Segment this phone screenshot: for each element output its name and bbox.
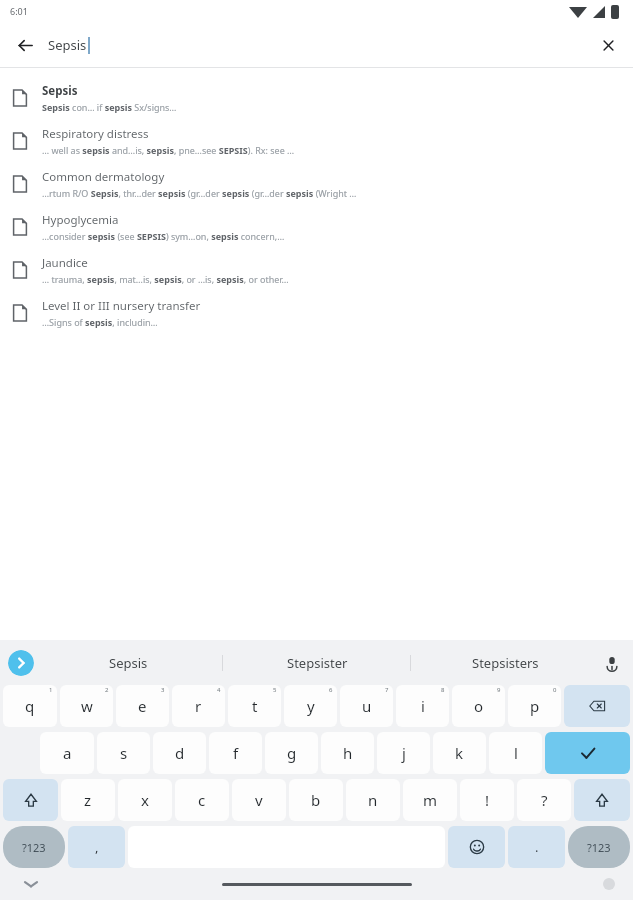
button[interactable]: Shift xyxy=(574,779,630,821)
button[interactable]: Level II or III nursery transfer xyxy=(0,291,633,334)
button[interactable]: Stepsister xyxy=(223,640,411,685)
staticText: 4 xyxy=(217,686,221,694)
button[interactable]: k xyxy=(433,732,486,774)
button[interactable]: . xyxy=(508,826,565,868)
button[interactable]: Sepsis xyxy=(34,640,223,685)
staticText: o xyxy=(474,696,484,716)
staticText: e xyxy=(138,696,147,716)
button[interactable]: w xyxy=(60,685,113,727)
staticText: t xyxy=(252,696,258,716)
staticText: ?123 xyxy=(22,840,46,855)
button[interactable]: Settings xyxy=(603,878,615,890)
staticText: . xyxy=(535,838,539,856)
staticText: c xyxy=(198,790,206,810)
button[interactable]: v xyxy=(232,779,286,821)
staticText: … trauma, sepsis, mat…is, sepsis, or …is… xyxy=(42,273,289,285)
button[interactable]: j xyxy=(377,732,430,774)
staticText: x xyxy=(141,790,149,810)
staticText: m xyxy=(423,790,438,810)
staticText: 1 xyxy=(49,686,53,694)
button[interactable]: Shift xyxy=(3,779,58,821)
button[interactable]: Backspace xyxy=(564,685,630,727)
button[interactable]: ?123 xyxy=(3,826,65,868)
staticText: p xyxy=(530,696,540,716)
staticText: …rtum R/O Sepsis, thr…der sepsis (gr…der… xyxy=(42,187,357,199)
staticText: 3 xyxy=(161,686,165,694)
staticText: i xyxy=(421,696,425,716)
button[interactable]: u xyxy=(340,685,393,727)
button[interactable]: ? xyxy=(517,779,571,821)
button[interactable]: c xyxy=(175,779,229,821)
staticText: 9 xyxy=(497,686,501,694)
staticText: j xyxy=(402,743,406,763)
button[interactable]: e xyxy=(116,685,169,727)
staticText: Sepsis xyxy=(48,36,87,54)
button[interactable]: More suggestions xyxy=(8,650,34,676)
staticText: ?123 xyxy=(587,840,611,855)
button[interactable]: Back xyxy=(10,30,40,60)
button[interactable]: z xyxy=(61,779,115,821)
staticText: …Signs of sepsis, includin… xyxy=(42,316,158,328)
button[interactable]: y xyxy=(284,685,337,727)
staticText: ! xyxy=(485,790,490,810)
button[interactable]: Hypoglycemia xyxy=(0,205,633,248)
button[interactable]: Clear search xyxy=(593,30,623,60)
button[interactable]: x xyxy=(118,779,172,821)
button[interactable]: a xyxy=(40,732,94,774)
staticText: a xyxy=(63,743,72,763)
staticText: … well as sepsis and…is, sepsis, pne…see… xyxy=(42,144,295,156)
button[interactable]: m xyxy=(403,779,457,821)
button[interactable]: r xyxy=(172,685,225,727)
button[interactable]: n xyxy=(346,779,400,821)
button[interactable]: d xyxy=(153,732,206,774)
staticText: z xyxy=(84,790,92,810)
button[interactable]: ?123 xyxy=(568,826,630,868)
staticText: Respiratory distress xyxy=(42,126,149,142)
staticText: 6:01 xyxy=(10,5,28,17)
button[interactable]: Hide keyboard xyxy=(20,873,42,895)
button[interactable]: ! xyxy=(460,779,514,821)
button[interactable]: p xyxy=(508,685,561,727)
staticText: n xyxy=(368,790,378,810)
button[interactable]: Respiratory distress xyxy=(0,119,633,162)
staticText: ? xyxy=(541,790,548,810)
staticText: y xyxy=(307,696,315,716)
button[interactable]: s xyxy=(97,732,150,774)
staticText: Stepsister xyxy=(287,654,348,672)
button[interactable]: g xyxy=(265,732,318,774)
button[interactable]: Common dermatology xyxy=(0,162,633,205)
button[interactable]: t xyxy=(228,685,281,727)
staticText: w xyxy=(81,696,93,716)
staticText: 6 xyxy=(329,686,333,694)
staticText: …consider sepsis (see SEPSIS) sym…on, se… xyxy=(42,230,285,242)
button[interactable]: Sepsis xyxy=(0,76,633,119)
button[interactable]: i xyxy=(396,685,449,727)
button[interactable]: l xyxy=(489,732,542,774)
staticText: s xyxy=(120,743,128,763)
button[interactable]: q xyxy=(3,685,57,727)
staticText: Sepsis xyxy=(42,83,78,99)
staticText: g xyxy=(287,743,297,763)
staticText: Sepsis con… if sepsis Sx/signs… xyxy=(42,101,177,113)
staticText: 0 xyxy=(553,686,557,694)
button[interactable]: h xyxy=(321,732,374,774)
staticText: 8 xyxy=(441,686,445,694)
staticText: v xyxy=(255,790,263,810)
button[interactable]: Voice input xyxy=(599,650,625,676)
button[interactable]: Enter xyxy=(545,732,630,774)
button[interactable]: Stepsisters xyxy=(411,640,599,685)
staticText: 2 xyxy=(105,686,109,694)
button[interactable]: Emoji xyxy=(448,826,505,868)
button[interactable]: Jaundice xyxy=(0,248,633,291)
button[interactable]: o xyxy=(452,685,505,727)
staticText: Level II or III nursery transfer xyxy=(42,298,201,314)
staticText: q xyxy=(25,696,35,716)
button[interactable]: , xyxy=(68,826,125,868)
button[interactable]: f xyxy=(209,732,262,774)
staticText: u xyxy=(362,696,372,716)
staticText: b xyxy=(311,790,321,810)
staticText: Stepsisters xyxy=(472,654,539,672)
button[interactable]: b xyxy=(289,779,343,821)
staticText: d xyxy=(175,743,185,763)
